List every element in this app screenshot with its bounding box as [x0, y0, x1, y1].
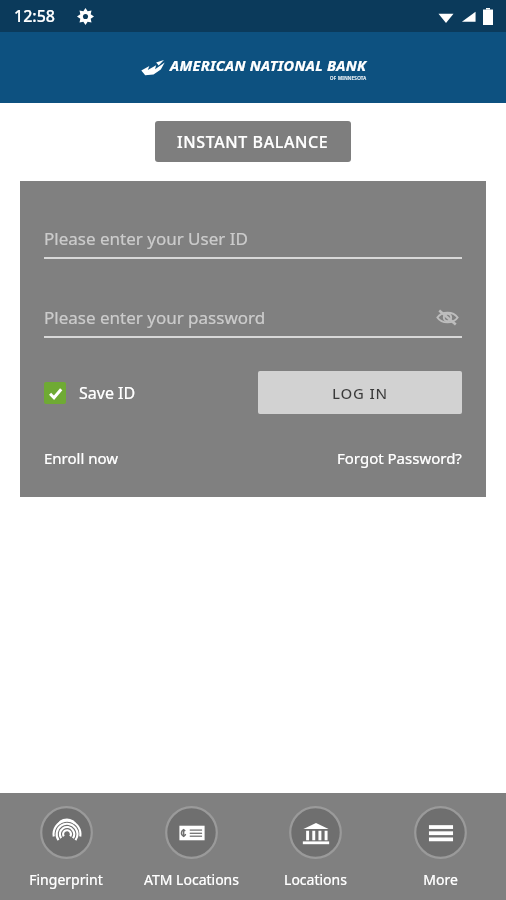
button[interactable]: ATM Locations: [133, 793, 249, 889]
staticText: LOG IN: [332, 383, 389, 403]
staticText: Please enter your User ID: [44, 227, 248, 250]
button[interactable]: Save ID: [44, 382, 136, 404]
staticText: Please enter your password: [44, 306, 266, 329]
staticText: Locations: [284, 870, 347, 889]
button[interactable]: Please enter your password: [44, 302, 462, 332]
button[interactable]: INSTANT BALANCE: [155, 121, 351, 162]
staticText: OF MINNESOTA: [330, 75, 367, 81]
staticText: INSTANT BALANCE: [177, 131, 329, 153]
staticText: ATM Locations: [144, 870, 239, 889]
button[interactable]: Locations: [257, 793, 373, 889]
button[interactable]: Fingerprint: [8, 793, 124, 889]
staticText: Enroll now: [44, 448, 119, 468]
button[interactable]: Show password: [432, 302, 462, 332]
staticText: Save ID: [79, 382, 136, 404]
button[interactable]: More: [382, 793, 498, 889]
button[interactable]: Please enter your User ID: [44, 223, 462, 253]
button[interactable]: LOG IN: [258, 371, 462, 414]
button[interactable]: Enroll now: [44, 448, 119, 468]
staticText: AMERICAN NATIONAL BANK: [170, 55, 367, 75]
staticText: 12:58: [14, 5, 55, 27]
staticText: Forgot Password?: [337, 448, 462, 468]
staticText: Fingerprint: [29, 870, 103, 889]
staticText: More: [423, 870, 458, 889]
button[interactable]: Forgot Password?: [337, 448, 462, 468]
